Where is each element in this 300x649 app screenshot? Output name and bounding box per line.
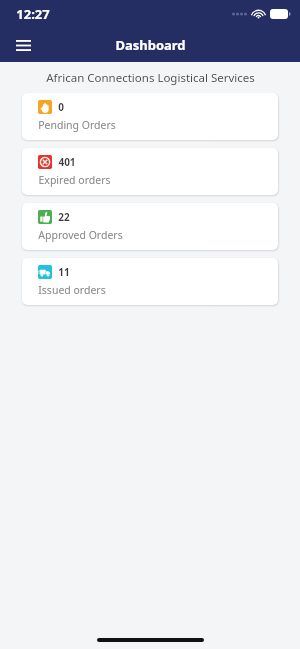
- staticText: 22: [58, 210, 70, 224]
- button[interactable]: 401: [22, 148, 278, 195]
- button[interactable]: 0: [22, 93, 278, 140]
- staticText: Expired orders: [38, 173, 111, 187]
- staticText: 11: [58, 265, 70, 279]
- button[interactable]: Open navigation menu: [8, 30, 38, 60]
- staticText: 0: [58, 100, 64, 114]
- staticText: 12:27: [16, 5, 50, 23]
- staticText: Dashboard: [115, 36, 186, 54]
- staticText: Approved Orders: [38, 228, 123, 242]
- staticText: 401: [58, 155, 76, 169]
- staticText: Issued orders: [38, 283, 106, 297]
- staticText: African Connections Logistical Services: [46, 70, 255, 86]
- button[interactable]: 22: [22, 203, 278, 250]
- button[interactable]: 11: [22, 258, 278, 305]
- staticText: Pending Orders: [38, 118, 116, 132]
